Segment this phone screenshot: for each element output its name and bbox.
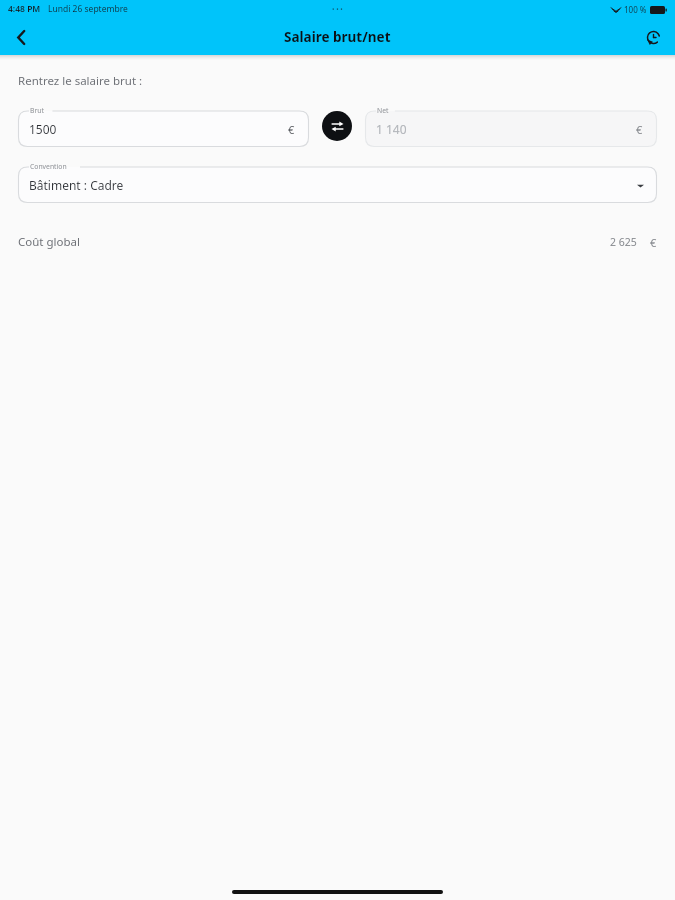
staticText: 100 % <box>624 4 647 15</box>
staticText: € <box>636 122 643 137</box>
button[interactable]: Back <box>3 19 39 55</box>
staticText: 4:48 PM <box>8 3 41 15</box>
staticText: 1500 <box>29 121 57 137</box>
staticText: Net <box>377 106 389 115</box>
button[interactable]: Net <box>365 105 657 147</box>
staticText: Coût global <box>18 234 80 250</box>
staticText: • • • <box>332 5 343 14</box>
button[interactable]: Brut <box>18 105 309 147</box>
staticText: Salaire brut/net <box>284 28 391 46</box>
staticText: Brut <box>30 106 44 115</box>
staticText: Bâtiment : Cadre <box>29 177 124 193</box>
staticText: € <box>650 235 657 250</box>
button[interactable]: Coût global <box>0 234 675 250</box>
staticText: Rentrez le salaire brut : <box>18 73 143 89</box>
button[interactable]: History <box>636 20 670 54</box>
staticText: 1 140 <box>376 121 407 137</box>
staticText: € <box>288 122 295 137</box>
staticText: Lundi 26 septembre <box>48 3 128 15</box>
staticText: Convention <box>30 162 67 171</box>
button[interactable]: Swap brut and net <box>322 111 352 141</box>
staticText: 2 625 <box>610 235 637 249</box>
button[interactable]: Convention <box>18 161 657 203</box>
